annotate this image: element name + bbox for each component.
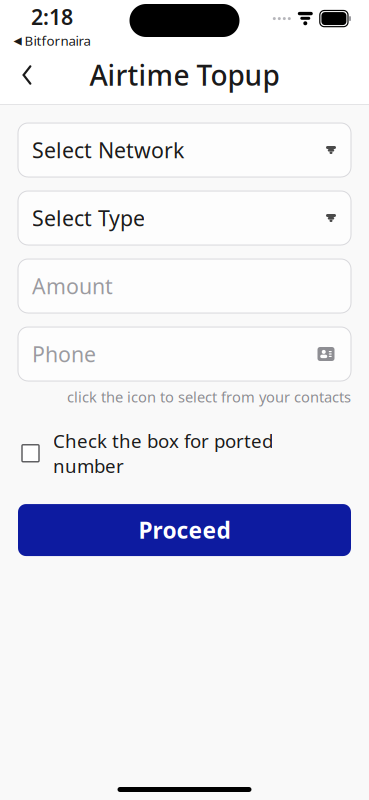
button[interactable]: Check the box for ported number	[0, 428, 369, 478]
staticText: Amount	[32, 272, 113, 300]
staticText: Airtime Topup	[89, 56, 279, 94]
staticText: Select Network	[32, 136, 184, 164]
button[interactable]: Select from contacts	[315, 345, 337, 363]
staticText: 2:18	[31, 2, 73, 31]
staticText: Select Type	[32, 204, 145, 232]
staticText: click the icon to select from your conta…	[67, 387, 351, 406]
staticText: Phone	[32, 340, 96, 368]
button[interactable]: Proceed	[0, 504, 369, 556]
button[interactable]: Back	[4, 52, 50, 98]
staticText: Check the box for ported number	[53, 428, 273, 478]
button[interactable]: Amount	[0, 259, 369, 313]
staticText: Bitfornaira	[24, 32, 90, 49]
button[interactable]: Select Network	[0, 123, 369, 177]
staticText: Proceed	[138, 515, 230, 545]
button[interactable]: Select Type	[0, 191, 369, 245]
staticText: ◀	[13, 35, 21, 47]
